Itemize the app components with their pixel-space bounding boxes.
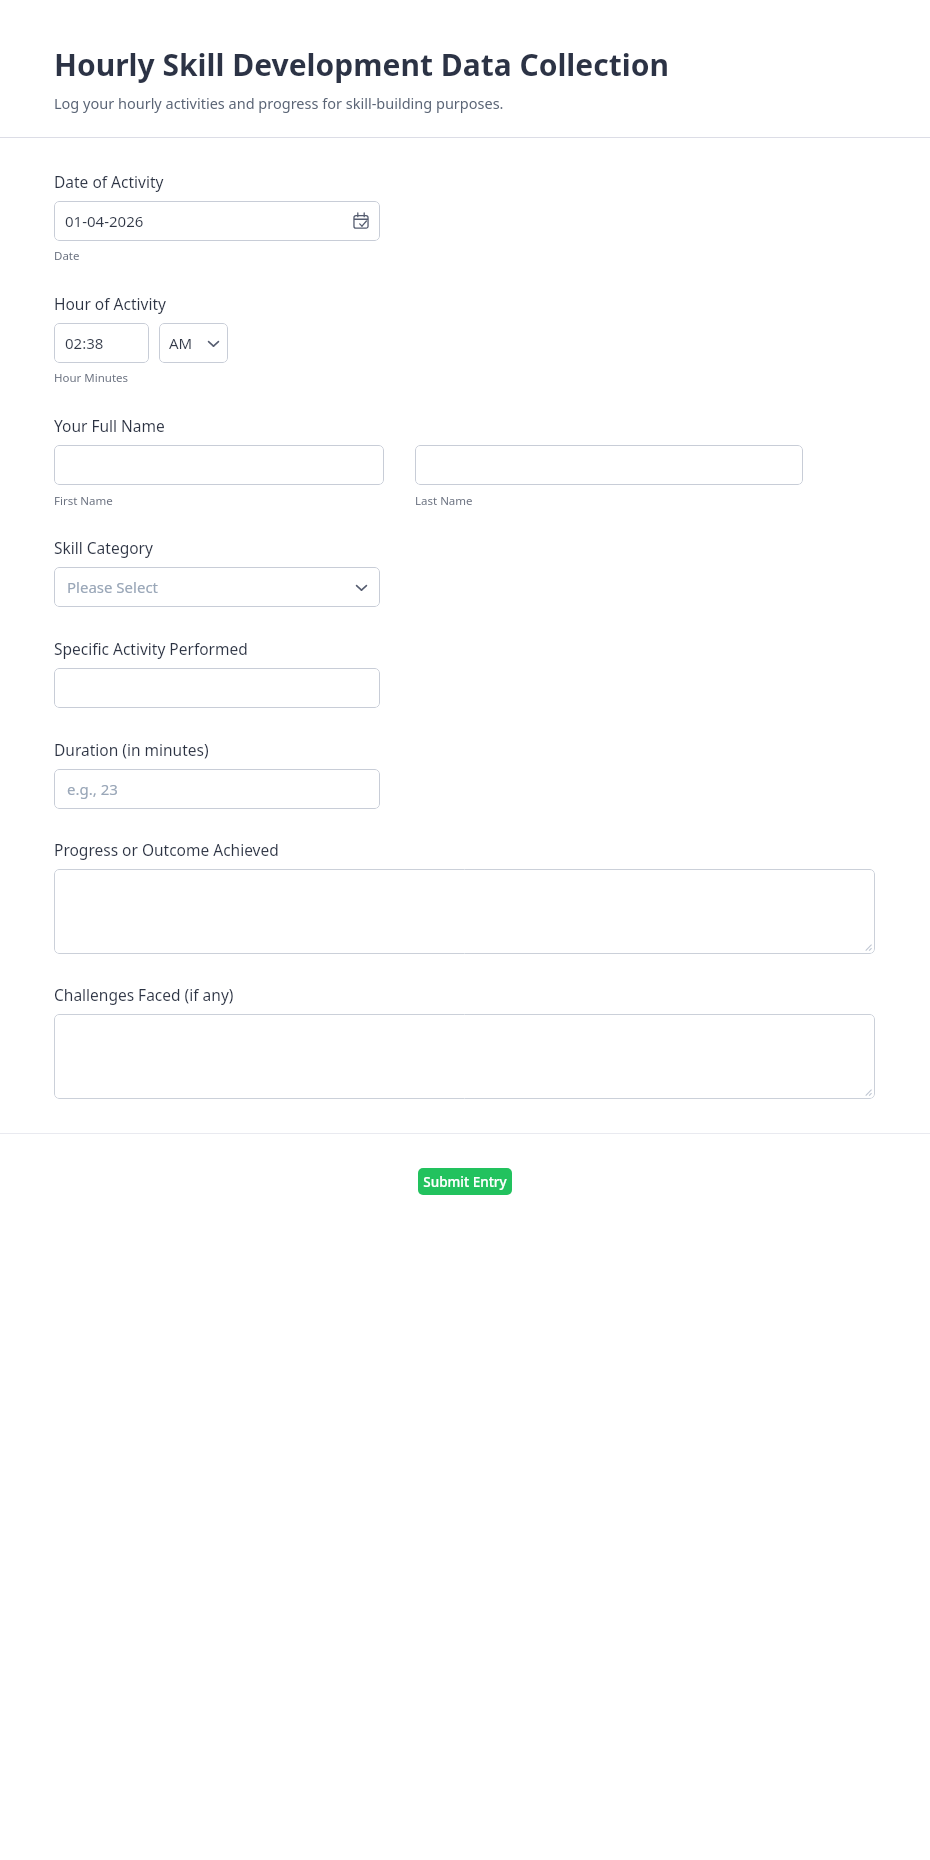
other: Open date picker [353,213,369,229]
staticText: Hour Minutes [54,370,129,386]
staticText: First Name [54,493,113,509]
staticText: Hour of Activity [54,293,166,314]
staticText: 02:38 [65,333,104,353]
button[interactable]: Submit Entry [418,1168,512,1195]
staticText: e.g., 23 [67,779,118,799]
staticText: Date of Activity [54,171,164,192]
button[interactable] [54,445,384,485]
staticText: Submit Entry [423,1173,507,1191]
button[interactable] [54,869,875,954]
button[interactable]: e.g., 23 [54,769,380,809]
staticText: Your Full Name [54,415,165,436]
staticText: Please Select [67,577,159,597]
staticText: Log your hourly activities and progress … [54,93,504,113]
staticText: 01-04-2026 [65,211,144,231]
button[interactable]: 01-04-2026 [54,201,380,241]
button[interactable] [54,1014,875,1099]
staticText: AM [169,333,193,353]
button[interactable] [54,668,380,708]
staticText: Skill Category [54,537,153,558]
button[interactable]: AM [159,323,228,363]
staticText: Specific Activity Performed [54,638,248,659]
button[interactable]: 02:38 [54,323,149,363]
staticText: Last Name [415,493,473,509]
staticText: Progress or Outcome Achieved [54,839,279,860]
button[interactable] [415,445,803,485]
staticText: Challenges Faced (if any) [54,984,234,1005]
button[interactable]: Please Select [54,567,380,607]
staticText: Date [54,248,80,264]
staticText: Duration (in minutes) [54,739,209,760]
staticText: Hourly Skill Development Data Collection [54,44,669,85]
